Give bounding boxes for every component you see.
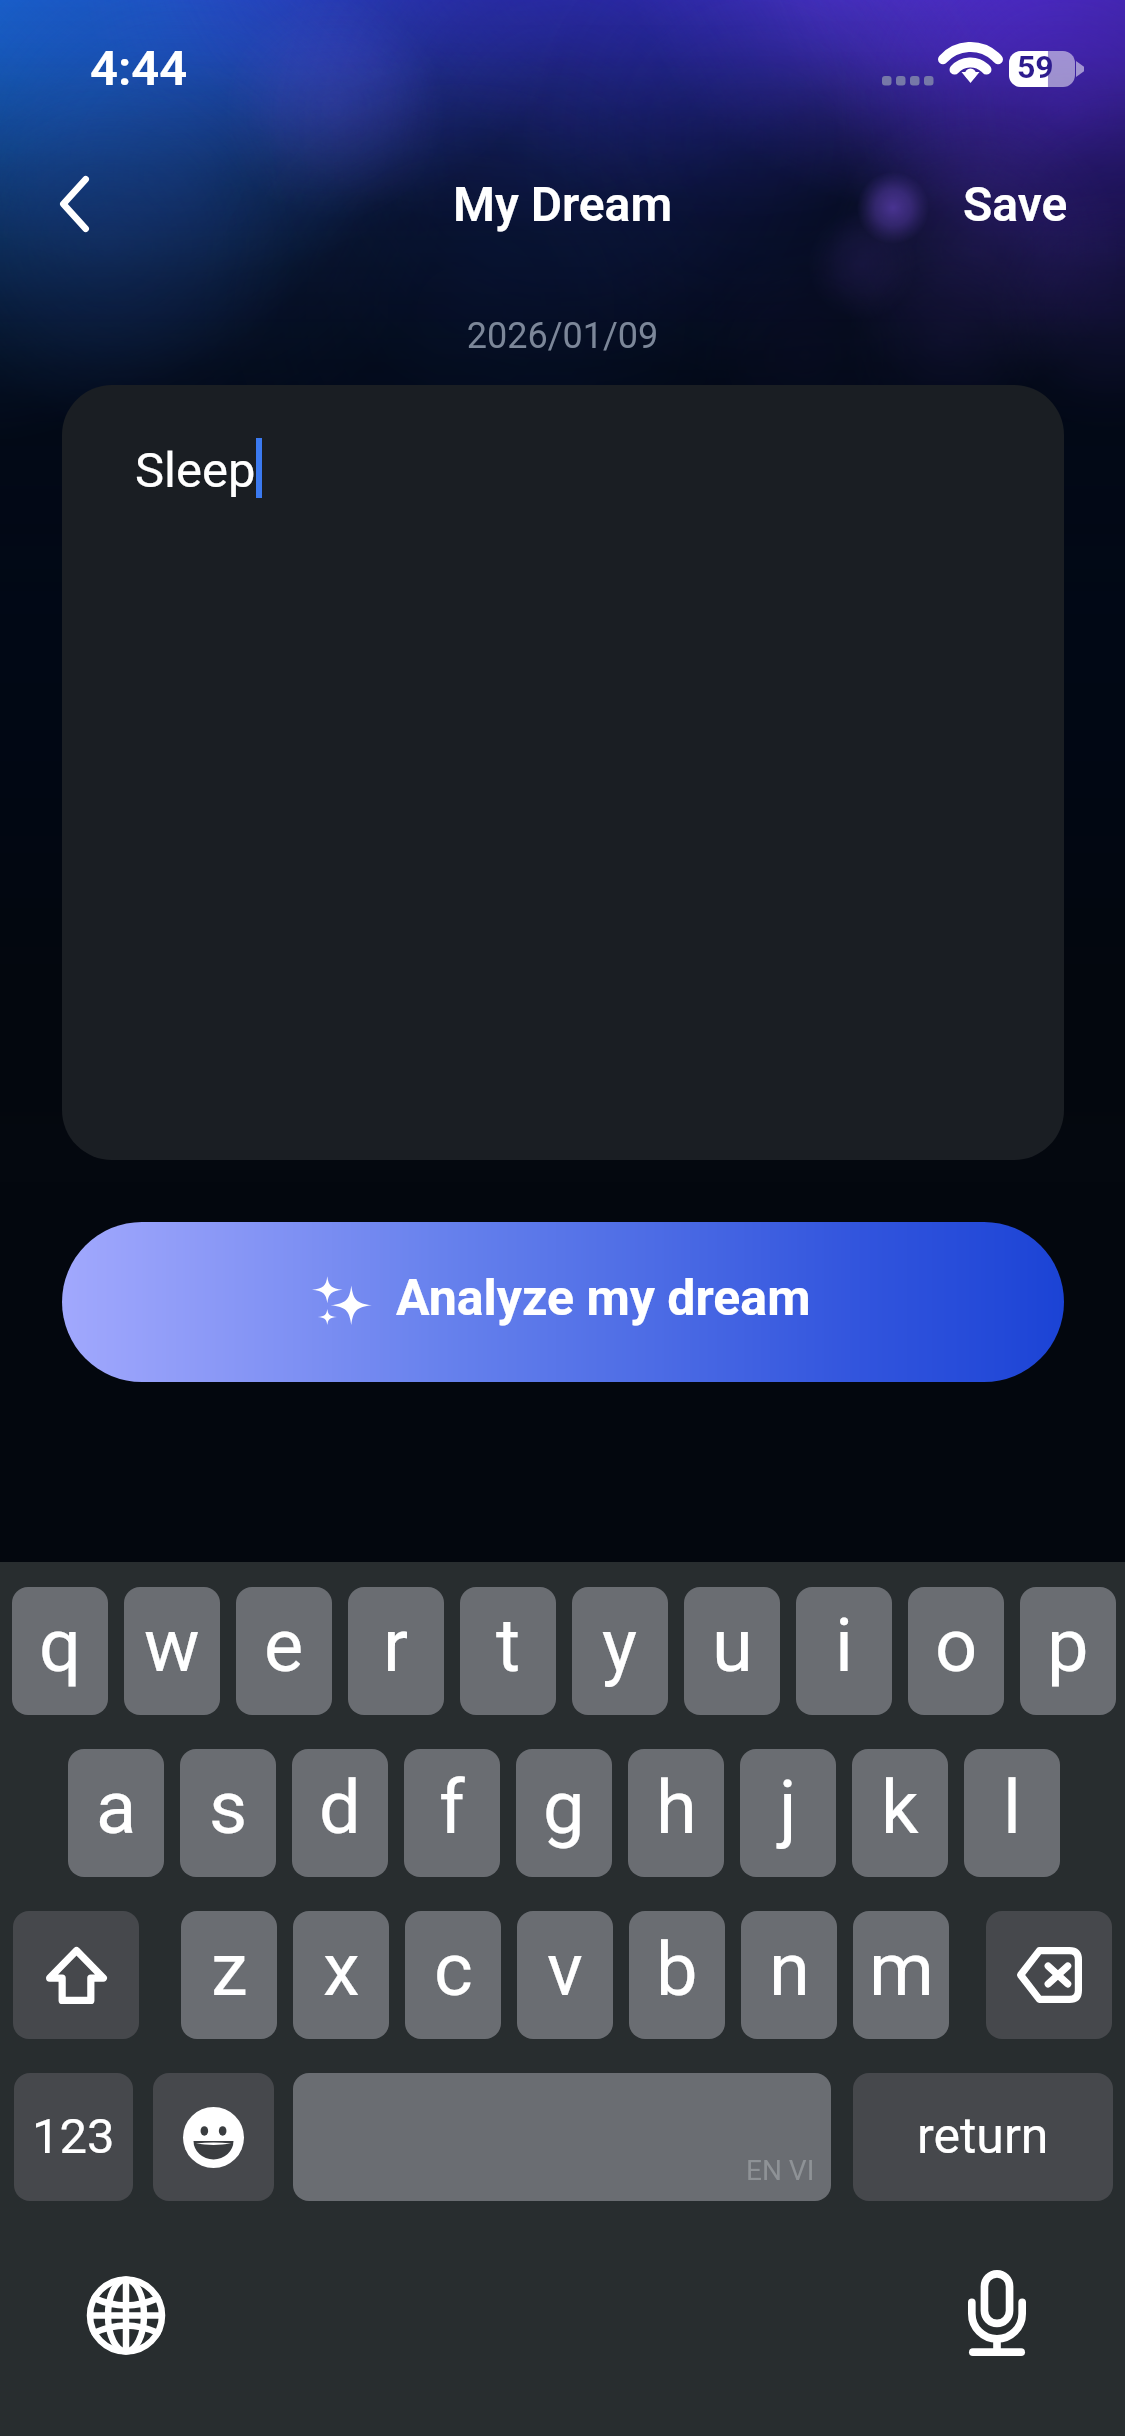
- staticText: 59: [1017, 48, 1054, 84]
- staticText: 123: [32, 2108, 115, 2165]
- staticText: t: [496, 1602, 521, 1689]
- button[interactable]: Dictate: [968, 2270, 1026, 2356]
- button[interactable]: n: [741, 1911, 837, 2039]
- staticText: u: [712, 1602, 753, 1689]
- button[interactable]: Shift: [13, 1911, 139, 2039]
- staticText: x: [323, 1926, 360, 2013]
- button[interactable]: q: [12, 1587, 108, 1715]
- staticText: 2026/01/09: [0, 315, 1125, 357]
- staticText: z: [211, 1926, 248, 2013]
- button[interactable]: c: [405, 1911, 501, 2039]
- button[interactable]: b: [629, 1911, 725, 2039]
- staticText: e: [264, 1602, 304, 1689]
- staticText: Sleep: [135, 442, 256, 499]
- button[interactable]: a: [68, 1749, 164, 1877]
- button[interactable]: Emoji: [153, 2073, 274, 2201]
- button[interactable]: Switch keyboard: [86, 2275, 166, 2356]
- staticText: d: [319, 1764, 361, 1851]
- button[interactable]: v: [517, 1911, 613, 2039]
- button[interactable]: Backspace: [986, 1911, 1112, 2039]
- button[interactable]: x: [293, 1911, 389, 2039]
- button[interactable]: k: [852, 1749, 948, 1877]
- button[interactable]: p: [1020, 1587, 1116, 1715]
- staticText: a: [96, 1764, 137, 1851]
- button[interactable]: o: [908, 1587, 1004, 1715]
- button[interactable]: Space: [293, 2073, 831, 2201]
- staticText: My Dream: [0, 176, 1125, 232]
- staticText: g: [543, 1764, 585, 1851]
- button[interactable]: Save: [943, 159, 1088, 249]
- staticText: p: [1047, 1602, 1089, 1689]
- button[interactable]: h: [628, 1749, 724, 1877]
- staticText: return: [917, 2107, 1049, 2166]
- button[interactable]: g: [516, 1749, 612, 1877]
- staticText: c: [434, 1926, 473, 2013]
- button[interactable]: u: [684, 1587, 780, 1715]
- button[interactable]: t: [460, 1587, 556, 1715]
- staticText: b: [656, 1926, 698, 2013]
- button[interactable]: y: [572, 1587, 668, 1715]
- button[interactable]: j: [740, 1749, 836, 1877]
- button[interactable]: e: [236, 1587, 332, 1715]
- button[interactable]: return: [853, 2073, 1113, 2201]
- button[interactable]: l: [964, 1749, 1060, 1877]
- staticText: f: [439, 1764, 465, 1851]
- staticText: Analyze my dream: [396, 1269, 811, 1328]
- button[interactable]: Sleep: [62, 385, 1064, 1160]
- staticText: Save: [963, 176, 1068, 232]
- button[interactable]: r: [348, 1587, 444, 1715]
- button[interactable]: m: [853, 1911, 949, 2039]
- staticText: k: [881, 1764, 919, 1851]
- button[interactable]: Back: [24, 154, 124, 254]
- button[interactable]: z: [181, 1911, 277, 2039]
- staticText: l: [1003, 1764, 1021, 1851]
- staticText: j: [779, 1764, 797, 1851]
- staticText: y: [602, 1602, 638, 1689]
- staticText: h: [656, 1764, 697, 1851]
- staticText: 4:44: [90, 40, 188, 97]
- button[interactable]: s: [180, 1749, 276, 1877]
- staticText: w: [144, 1602, 200, 1689]
- staticText: r: [383, 1602, 409, 1689]
- staticText: m: [869, 1926, 934, 2013]
- staticText: v: [547, 1926, 583, 2013]
- button[interactable]: Analyze my dream: [62, 1222, 1064, 1382]
- button[interactable]: w: [124, 1587, 220, 1715]
- staticText: o: [935, 1602, 978, 1689]
- staticText: EN VI: [746, 2154, 815, 2187]
- button[interactable]: i: [796, 1587, 892, 1715]
- button[interactable]: d: [292, 1749, 388, 1877]
- button[interactable]: 123: [14, 2073, 133, 2201]
- button[interactable]: f: [404, 1749, 500, 1877]
- staticText: s: [209, 1764, 248, 1851]
- staticText: i: [835, 1602, 853, 1689]
- staticText: n: [769, 1926, 810, 2013]
- staticText: q: [39, 1602, 82, 1689]
